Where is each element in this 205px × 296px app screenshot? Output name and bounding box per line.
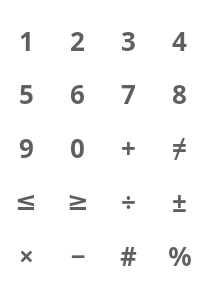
staticText: 8 xyxy=(172,76,187,111)
staticText: + xyxy=(121,130,136,165)
button[interactable]: − xyxy=(52,228,103,282)
button[interactable]: ≥ xyxy=(52,174,103,228)
staticText: ± xyxy=(172,184,187,219)
button[interactable]: 3 xyxy=(103,14,154,67)
button[interactable]: ≠ xyxy=(154,120,205,174)
staticText: 5 xyxy=(19,76,34,111)
staticText: ≥ xyxy=(67,186,89,216)
button[interactable]: ± xyxy=(154,174,205,228)
staticText: # xyxy=(120,238,137,273)
staticText: − xyxy=(70,238,86,273)
staticText: 1 xyxy=(19,23,34,58)
staticText: ≠ xyxy=(172,130,187,165)
button[interactable]: 0 xyxy=(52,120,103,174)
staticText: 3 xyxy=(121,23,136,58)
button[interactable]: 7 xyxy=(103,67,154,120)
staticText: 9 xyxy=(19,130,34,165)
button[interactable]: + xyxy=(103,120,154,174)
staticText: 0 xyxy=(70,130,85,165)
button[interactable]: % xyxy=(154,228,205,282)
staticText: 2 xyxy=(70,23,85,58)
staticText: 6 xyxy=(70,76,85,111)
button[interactable]: × xyxy=(0,228,52,282)
staticText: ≤ xyxy=(15,186,37,216)
button[interactable]: ÷ xyxy=(103,174,154,228)
button[interactable]: 2 xyxy=(52,14,103,67)
button[interactable]: 9 xyxy=(0,120,52,174)
staticText: ÷ xyxy=(121,184,136,219)
button[interactable]: 5 xyxy=(0,67,52,120)
staticText: 7 xyxy=(121,76,136,111)
button[interactable]: 1 xyxy=(0,14,52,67)
button[interactable]: ≤ xyxy=(0,174,52,228)
staticText: × xyxy=(19,238,34,273)
button[interactable]: 8 xyxy=(154,67,205,120)
staticText: 4 xyxy=(172,23,187,58)
button[interactable]: 4 xyxy=(154,14,205,67)
button[interactable]: # xyxy=(103,228,154,282)
button[interactable]: 6 xyxy=(52,67,103,120)
staticText: % xyxy=(168,238,192,273)
